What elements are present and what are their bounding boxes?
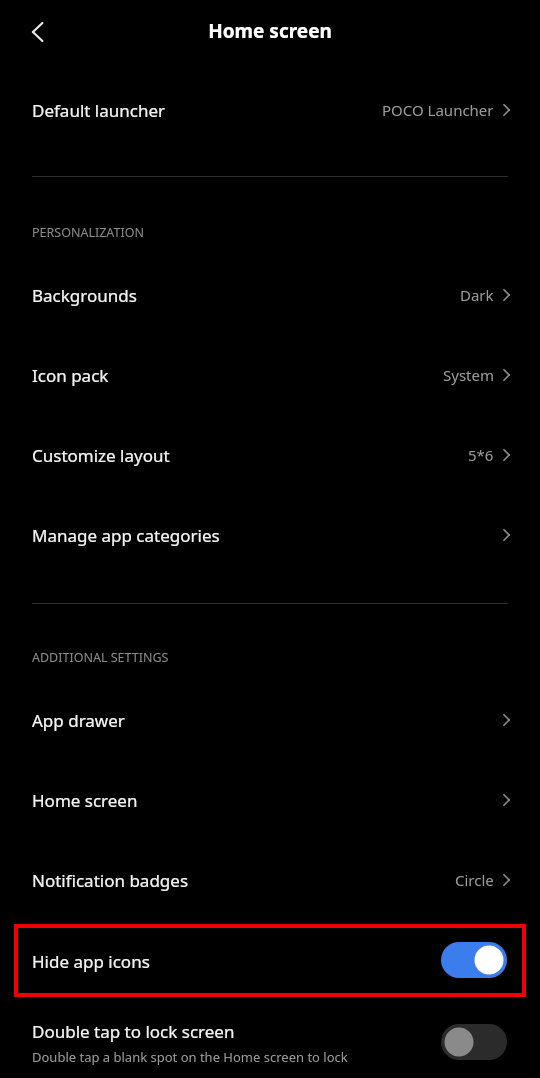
staticText: System: [443, 365, 494, 385]
staticText: PERSONALIZATION: [32, 224, 144, 241]
staticText: Double tap to lock screen: [32, 1020, 235, 1043]
staticText: Double tap a blank spot on the Home scre…: [32, 1048, 348, 1066]
button[interactable]: Back: [10, 4, 62, 56]
staticText: Circle: [455, 870, 494, 890]
button[interactable]: Customize layout: [0, 415, 540, 495]
staticText: Customize layout: [32, 444, 170, 467]
staticText: Manage app categories: [32, 524, 220, 547]
staticText: POCO Launcher: [382, 100, 494, 120]
button[interactable]: App drawer: [0, 680, 540, 760]
button[interactable]: Default launcher: [0, 70, 540, 150]
staticText: Icon pack: [32, 364, 109, 387]
button[interactable]: Toggle off: [441, 1024, 507, 1060]
button[interactable]: Backgrounds: [0, 255, 540, 335]
staticText: Hide app icons: [32, 950, 150, 973]
staticText: Home screen: [32, 789, 138, 812]
staticText: 5*6: [468, 445, 494, 465]
button[interactable]: Manage app categories: [0, 495, 540, 575]
button[interactable]: Icon pack: [0, 335, 540, 415]
button[interactable]: Home screen: [0, 760, 540, 840]
staticText: Dark: [460, 285, 494, 305]
staticText: Notification badges: [32, 869, 189, 892]
staticText: ADDITIONAL SETTINGS: [32, 649, 169, 666]
button[interactable]: Toggle on: [441, 942, 507, 978]
button[interactable]: Notification badges: [0, 840, 540, 920]
button[interactable]: Hide app icons: [0, 926, 540, 996]
staticText: Home screen: [0, 18, 540, 44]
staticText: App drawer: [32, 709, 125, 732]
staticText: Default launcher: [32, 99, 166, 122]
staticText: Backgrounds: [32, 284, 137, 307]
button[interactable]: Double tap to lock screen: [0, 1006, 540, 1078]
